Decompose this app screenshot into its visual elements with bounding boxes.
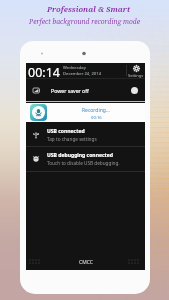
button[interactable]: Power saver off — [33, 79, 138, 101]
button[interactable]: USB debugging connected — [32, 146, 139, 171]
staticText: CMCC — [79, 259, 93, 266]
staticText: December 24, 2014 — [63, 71, 102, 77]
button[interactable]: Settings — [127, 65, 145, 78]
button[interactable]: USB connected — [32, 123, 139, 146]
staticText: Power saver off — [51, 87, 89, 94]
staticText: 00:14 — [28, 64, 60, 79]
staticText: Tap to change settings — [47, 136, 97, 142]
staticText: USB connected — [47, 128, 85, 135]
staticText: Touch to disable USB debugging. — [47, 160, 120, 166]
staticText: Perfect background recording mode — [29, 17, 140, 26]
staticText: Wednesday — [63, 65, 86, 71]
button[interactable]: Recording... — [26, 103, 145, 122]
staticText: Professional & Smart — [47, 4, 131, 14]
staticText: 00:16 — [91, 115, 102, 121]
staticText: Settings — [128, 73, 144, 78]
staticText: Recording... — [82, 107, 110, 114]
staticText: USB debugging connected — [47, 152, 113, 159]
